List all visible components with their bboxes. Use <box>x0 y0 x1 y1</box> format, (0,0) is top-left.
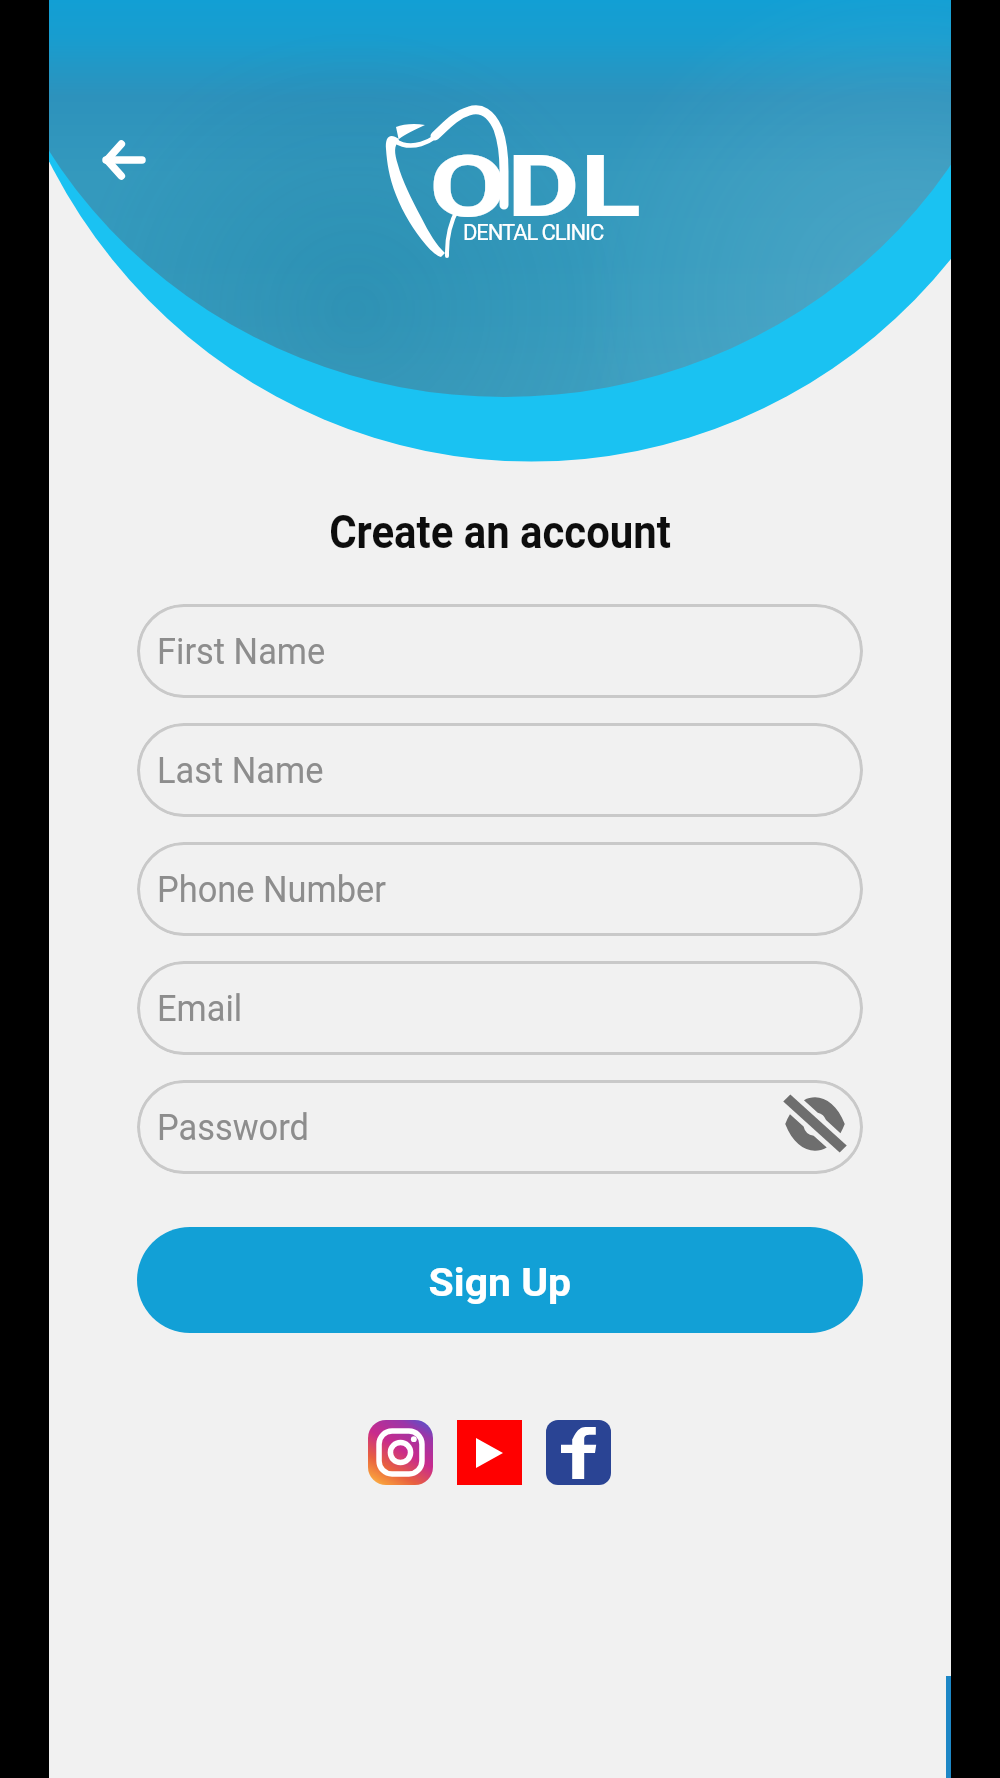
staticText: Sign Up <box>429 1260 571 1306</box>
button[interactable]: Show password <box>784 1097 846 1149</box>
button[interactable]: Facebook <box>546 1420 611 1485</box>
button[interactable]: Password <box>137 1080 863 1174</box>
staticText: Phone Number <box>157 868 387 911</box>
staticText: ODL <box>429 136 641 237</box>
button[interactable]: Last Name <box>137 723 863 817</box>
button[interactable]: YouTube <box>457 1420 522 1485</box>
button[interactable]: Instagram <box>368 1420 433 1485</box>
button[interactable]: Back <box>77 114 171 206</box>
staticText: Email <box>157 987 243 1030</box>
button[interactable]: First Name <box>137 604 863 698</box>
staticText: Last Name <box>157 749 324 792</box>
staticText: Create an account <box>90 505 910 559</box>
staticText: DENTAL CLINIC <box>463 220 604 246</box>
button[interactable]: Phone Number <box>137 842 863 936</box>
button[interactable]: Sign Up <box>137 1227 863 1333</box>
staticText: First Name <box>157 630 325 673</box>
staticText: Password <box>157 1106 309 1149</box>
button[interactable]: Email <box>137 961 863 1055</box>
